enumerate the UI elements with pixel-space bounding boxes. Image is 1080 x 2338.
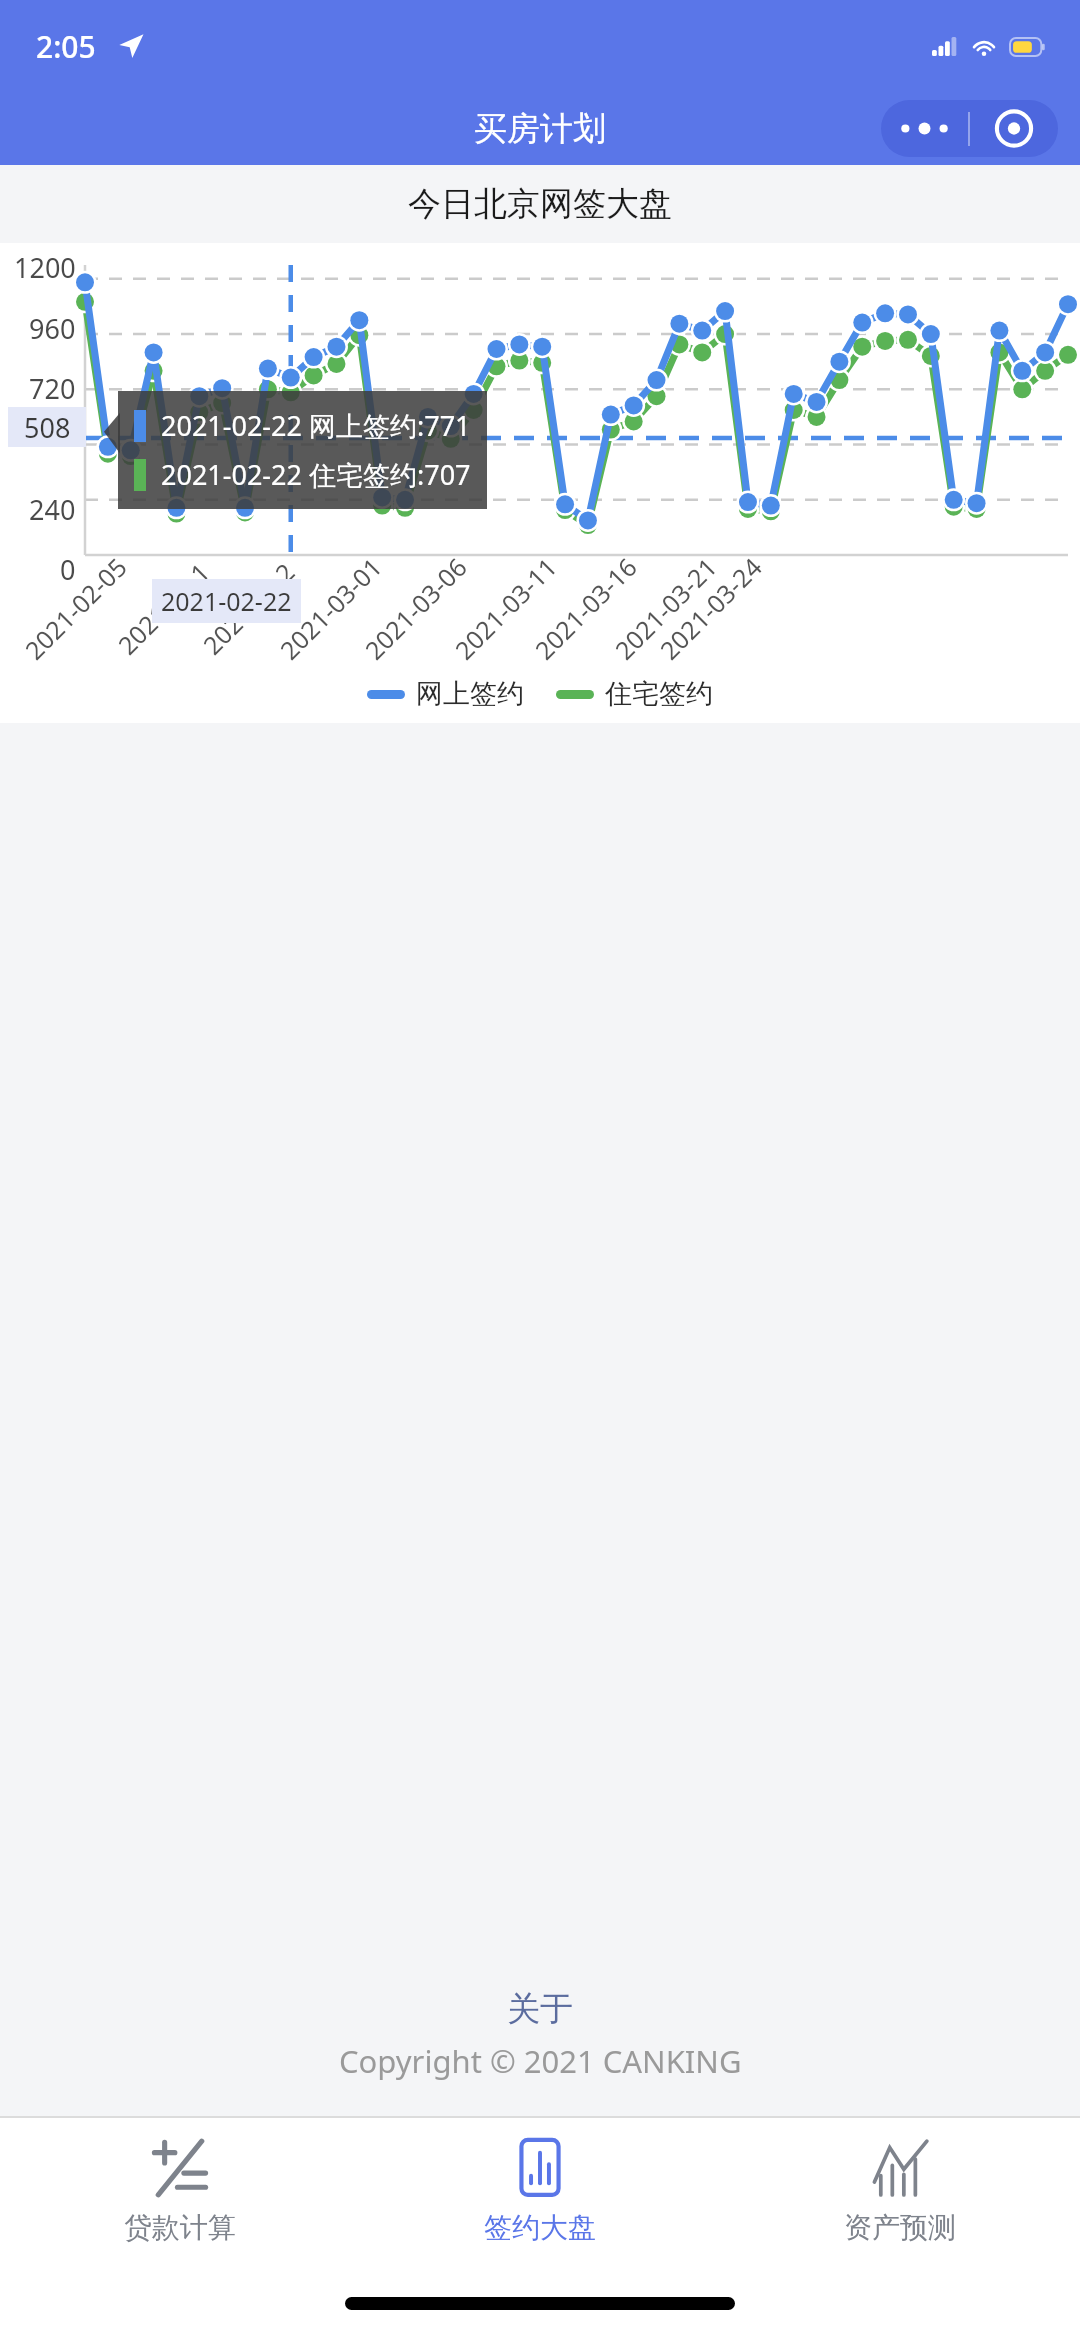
staticText: 1200 (14, 249, 76, 286)
staticText: 买房计划 (474, 108, 606, 150)
staticText: 2021-02-22 (161, 584, 292, 618)
staticText: 2021-03-01 (272, 550, 389, 666)
staticText: 资产预测 (844, 2210, 956, 2245)
staticText: 签约大盘 (484, 2210, 596, 2245)
staticText: 2021-03-11 (447, 550, 564, 666)
staticText: 2021-02-05 (17, 550, 134, 666)
staticText: 贷款计算 (124, 2210, 236, 2245)
staticText: 住宅签约 (605, 677, 713, 711)
staticText: 508 (24, 409, 71, 446)
staticText: 2021-02-1 (110, 555, 217, 661)
staticText: 今日北京网签大盘 (408, 183, 672, 225)
staticText: 240 (29, 491, 76, 528)
button[interactable]: More options and close mini program (881, 100, 1058, 157)
staticText: 2021-03-16 (527, 550, 644, 666)
staticText: 2:05 (36, 26, 96, 67)
staticText: 2021-03-21 (607, 550, 724, 666)
staticText: 2021-03-24 (652, 550, 769, 666)
button[interactable]: 贷款计算 (0, 2118, 360, 2268)
staticText: 2021-03-06 (357, 550, 474, 666)
staticText: 关于 (507, 1988, 573, 2030)
staticText: 2021-02-2 (195, 555, 302, 661)
staticText: 0 (60, 551, 76, 588)
staticText: 720 (29, 370, 76, 407)
staticText: 网上签约 (416, 677, 524, 711)
button[interactable]: 关于 (483, 1982, 597, 2036)
staticText: 960 (29, 310, 76, 347)
staticText: Copyright © 2021 CANKING (339, 2040, 742, 2082)
staticText: 2021-02-22 住宅签约:707 (161, 456, 471, 493)
button[interactable]: 资产预测 (720, 2118, 1080, 2268)
staticText: 2021-02-22 网上签约:771 (161, 407, 471, 444)
button[interactable]: 签约大盘 (360, 2118, 720, 2268)
